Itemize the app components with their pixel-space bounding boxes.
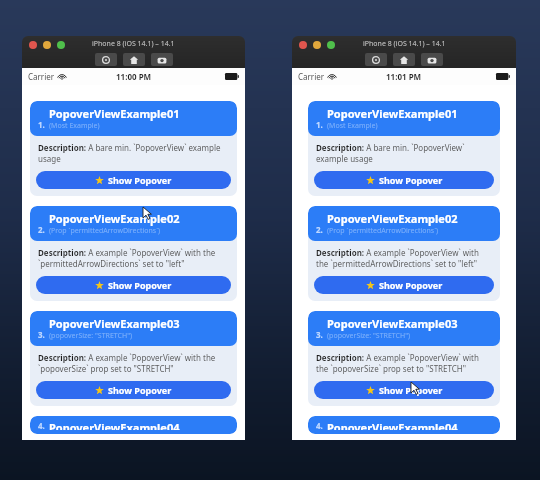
staticText: Show Popover	[108, 279, 172, 291]
staticText: 11:01 PM	[386, 71, 422, 82]
staticText: Description: A example `PopoverView` wit…	[316, 247, 492, 269]
staticText: Show Popover	[108, 174, 172, 186]
staticText: Description: A bare min. `PopoverView` e…	[316, 142, 492, 164]
staticText: Description: A example `PopoverView` wit…	[316, 352, 492, 374]
staticText: Carrier	[298, 71, 325, 82]
staticText: 4.	[38, 420, 45, 430]
staticText: 3.	[316, 329, 323, 340]
button[interactable]: 2.	[308, 206, 500, 241]
staticText: Description: A example `PopoverView` wit…	[38, 247, 229, 269]
staticText: 1.	[316, 119, 323, 130]
staticText: (Prop `permittedArrowDirections`)	[327, 226, 439, 236]
button[interactable]: 1.	[30, 101, 237, 136]
staticText: Description: A example `PopoverView` wit…	[38, 352, 229, 374]
button[interactable]: Screenshot	[151, 53, 173, 66]
staticText: (Most Example)	[327, 121, 378, 131]
staticText: PopoverViewExample03	[49, 316, 180, 331]
staticText: PopoverViewExample01	[327, 106, 458, 121]
button[interactable]: 4.	[308, 416, 500, 434]
staticText: PopoverViewExample04	[327, 420, 458, 430]
button[interactable]: Show Popover	[314, 381, 494, 399]
staticText: PopoverViewExample02	[327, 211, 458, 226]
button[interactable]: 2.	[30, 206, 237, 241]
button[interactable]: Rotate	[365, 53, 387, 66]
staticText: 3.	[38, 329, 45, 340]
staticText: 11:00 PM	[116, 71, 152, 82]
staticText: (popoverSize: "STRETCH")	[327, 331, 411, 341]
button[interactable]: 3.	[308, 311, 500, 346]
staticText: (Prop `permittedArrowDirections`)	[49, 226, 161, 236]
staticText: Description: A bare min. `PopoverView` e…	[38, 142, 229, 164]
staticText: Show Popover	[379, 279, 443, 291]
staticText: 2.	[316, 224, 323, 235]
staticText: iPhone 8 (iOS 14.1) – 14.1	[92, 39, 175, 49]
button[interactable]: Home	[123, 53, 145, 66]
button[interactable]: Show Popover	[36, 171, 231, 189]
staticText: PopoverViewExample04	[49, 420, 180, 430]
staticText: 1.	[38, 119, 45, 130]
button[interactable]: Show Popover	[36, 381, 231, 399]
staticText: Show Popover	[108, 384, 172, 396]
button[interactable]: 1.	[308, 101, 500, 136]
staticText: Show Popover	[379, 384, 443, 396]
staticText: 4.	[316, 420, 323, 430]
staticText: PopoverViewExample03	[327, 316, 458, 331]
button[interactable]: Show Popover	[36, 276, 231, 294]
button[interactable]: Rotate	[95, 53, 117, 66]
staticText: (popoverSize: "STRETCH")	[49, 331, 133, 341]
staticText: 2.	[38, 224, 45, 235]
staticText: (Most Example)	[49, 121, 100, 131]
staticText: iPhone 8 (iOS 14.1) – 14.1	[363, 39, 446, 49]
staticText: PopoverViewExample02	[49, 211, 180, 226]
staticText: Carrier	[28, 71, 55, 82]
button[interactable]: Show Popover	[314, 171, 494, 189]
staticText: PopoverViewExample01	[49, 106, 180, 121]
button[interactable]: 3.	[30, 311, 237, 346]
button[interactable]: Screenshot	[421, 53, 443, 66]
button[interactable]: Show Popover	[314, 276, 494, 294]
button[interactable]: Home	[393, 53, 415, 66]
button[interactable]: 4.	[30, 416, 237, 434]
staticText: Show Popover	[379, 174, 443, 186]
